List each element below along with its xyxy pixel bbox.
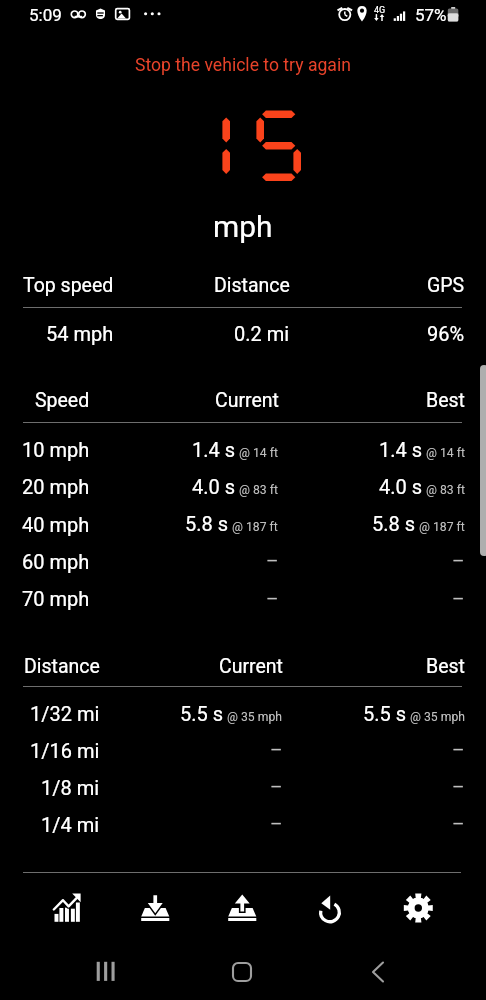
staticText: 4G	[374, 5, 386, 16]
staticText: 96%	[427, 322, 465, 345]
staticText: 10 mph	[22, 438, 90, 461]
button[interactable]	[0, 731, 486, 768]
staticText: GPS	[427, 274, 465, 297]
staticText: mph	[213, 209, 273, 244]
button[interactable]: Import	[111, 884, 198, 932]
staticText: @ 83 ft	[239, 483, 278, 497]
staticText: 4.0 s	[379, 475, 423, 498]
staticText: Current	[219, 655, 283, 678]
button[interactable]	[0, 579, 486, 616]
button[interactable]	[0, 505, 486, 542]
button[interactable]	[0, 805, 486, 842]
button[interactable]: Back	[356, 950, 400, 994]
staticText: 20 mph	[22, 475, 90, 498]
staticText: @ 14 ft	[239, 446, 278, 460]
staticText: –	[270, 738, 283, 760]
button[interactable]: Export	[198, 884, 286, 932]
staticText: –	[452, 549, 465, 571]
staticText: Speed	[35, 389, 90, 412]
staticText: 5.5 s	[180, 702, 224, 725]
staticText: @ 35 mph	[410, 710, 465, 724]
staticText: 5.5 s	[363, 702, 407, 725]
button[interactable]	[0, 430, 486, 467]
staticText: 4.0 s	[192, 475, 236, 498]
staticText: 54 mph	[46, 322, 114, 345]
staticText: @ 83 ft	[426, 483, 465, 497]
button[interactable]	[0, 468, 486, 505]
staticText: –	[270, 812, 283, 834]
staticText: –	[452, 775, 465, 797]
button[interactable]: Home	[220, 950, 264, 994]
staticText: Distance	[24, 655, 100, 678]
staticText: Top speed	[23, 274, 114, 297]
staticText: 1.4 s	[379, 438, 423, 461]
button[interactable]: Settings	[374, 884, 462, 932]
staticText: 1/32 mi	[30, 702, 100, 725]
button[interactable]	[0, 542, 486, 579]
staticText: @ 187 ft	[419, 520, 465, 534]
staticText: 0.2 mi	[234, 322, 290, 345]
staticText: 5:09	[29, 5, 62, 25]
staticText: @ 14 ft	[426, 446, 465, 460]
staticText: 40 mph	[22, 513, 90, 536]
staticText: –	[266, 587, 279, 609]
staticText: –	[266, 549, 279, 571]
staticText: 5.8 s	[185, 512, 229, 535]
button[interactable]	[0, 694, 486, 731]
staticText: –	[270, 775, 283, 797]
button[interactable]	[0, 314, 486, 351]
button[interactable]: Reset	[286, 884, 374, 932]
staticText: 1/8 mi	[41, 776, 100, 799]
staticText: Distance	[214, 274, 290, 297]
staticText: 70 mph	[22, 587, 90, 610]
staticText: Current	[215, 389, 279, 412]
staticText: 5.8 s	[372, 512, 416, 535]
staticText: 60 mph	[22, 550, 90, 573]
staticText: –	[452, 812, 465, 834]
staticText: Best	[426, 389, 465, 412]
staticText: –	[452, 587, 465, 609]
staticText: 1/4 mi	[41, 813, 100, 836]
staticText: 1/16 mi	[30, 739, 100, 762]
staticText: 57%	[415, 5, 447, 25]
staticText: @ 35 mph	[227, 710, 282, 724]
staticText: @ 187 ft	[232, 520, 278, 534]
staticText: Best	[426, 655, 465, 678]
staticText: Stop the vehicle to try again	[135, 55, 351, 76]
staticText: 1.4 s	[192, 438, 236, 461]
button[interactable]	[0, 768, 486, 805]
button[interactable]: Statistics	[24, 884, 111, 932]
button[interactable]: Recents	[84, 950, 128, 994]
staticText: –	[452, 738, 465, 760]
